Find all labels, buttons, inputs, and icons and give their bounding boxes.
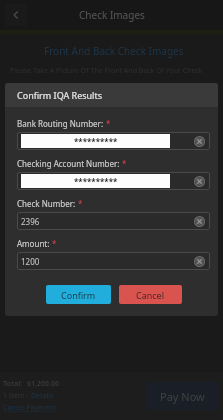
staticText: *	[106, 118, 111, 129]
staticText: Total:	[3, 379, 23, 389]
staticText: *	[122, 158, 127, 169]
button[interactable]: 2396	[17, 212, 210, 230]
staticText: Check Number:	[17, 198, 76, 209]
staticText: 1200	[21, 256, 192, 267]
staticText: Pay Now	[160, 389, 205, 404]
staticText: $1,200.00	[27, 379, 59, 389]
staticText: **********	[74, 176, 118, 187]
staticText: Confirm IQA Results	[17, 89, 103, 101]
button[interactable]: Back	[5, 4, 27, 26]
button[interactable]: Clear Checking Account Number:	[192, 174, 206, 188]
button[interactable]: Cancel Payment	[3, 403, 56, 413]
button[interactable]: Cancel	[119, 285, 182, 304]
button[interactable]: Pay Now	[146, 382, 218, 410]
button[interactable]: **********	[17, 172, 210, 190]
staticText: Amount:	[17, 238, 50, 249]
staticText: 2396	[21, 216, 192, 227]
staticText: Details	[31, 391, 54, 401]
staticText: Confirm	[61, 289, 96, 301]
staticText: Check Images	[79, 8, 145, 22]
staticText: **********	[74, 136, 118, 147]
button[interactable]: 1200	[17, 252, 210, 270]
button[interactable]: Clear Bank Routing Number:	[192, 134, 206, 148]
staticText: Bank Routing Number:	[17, 118, 104, 129]
staticText: *	[78, 198, 83, 209]
button[interactable]: Confirm	[46, 285, 111, 304]
button[interactable]: Clear Check Number:	[192, 214, 206, 228]
staticText: Cancel	[136, 289, 165, 301]
staticText: Checking Account Number:	[17, 158, 120, 169]
staticText: Front And Back Check Images	[44, 44, 223, 58]
staticText: *	[52, 238, 57, 249]
button[interactable]: Clear Amount:	[192, 254, 206, 268]
staticText: Please Take A Picture Of The Front And B…	[10, 66, 223, 76]
staticText: 1 Item -	[3, 391, 31, 401]
button[interactable]: **********	[17, 132, 210, 150]
